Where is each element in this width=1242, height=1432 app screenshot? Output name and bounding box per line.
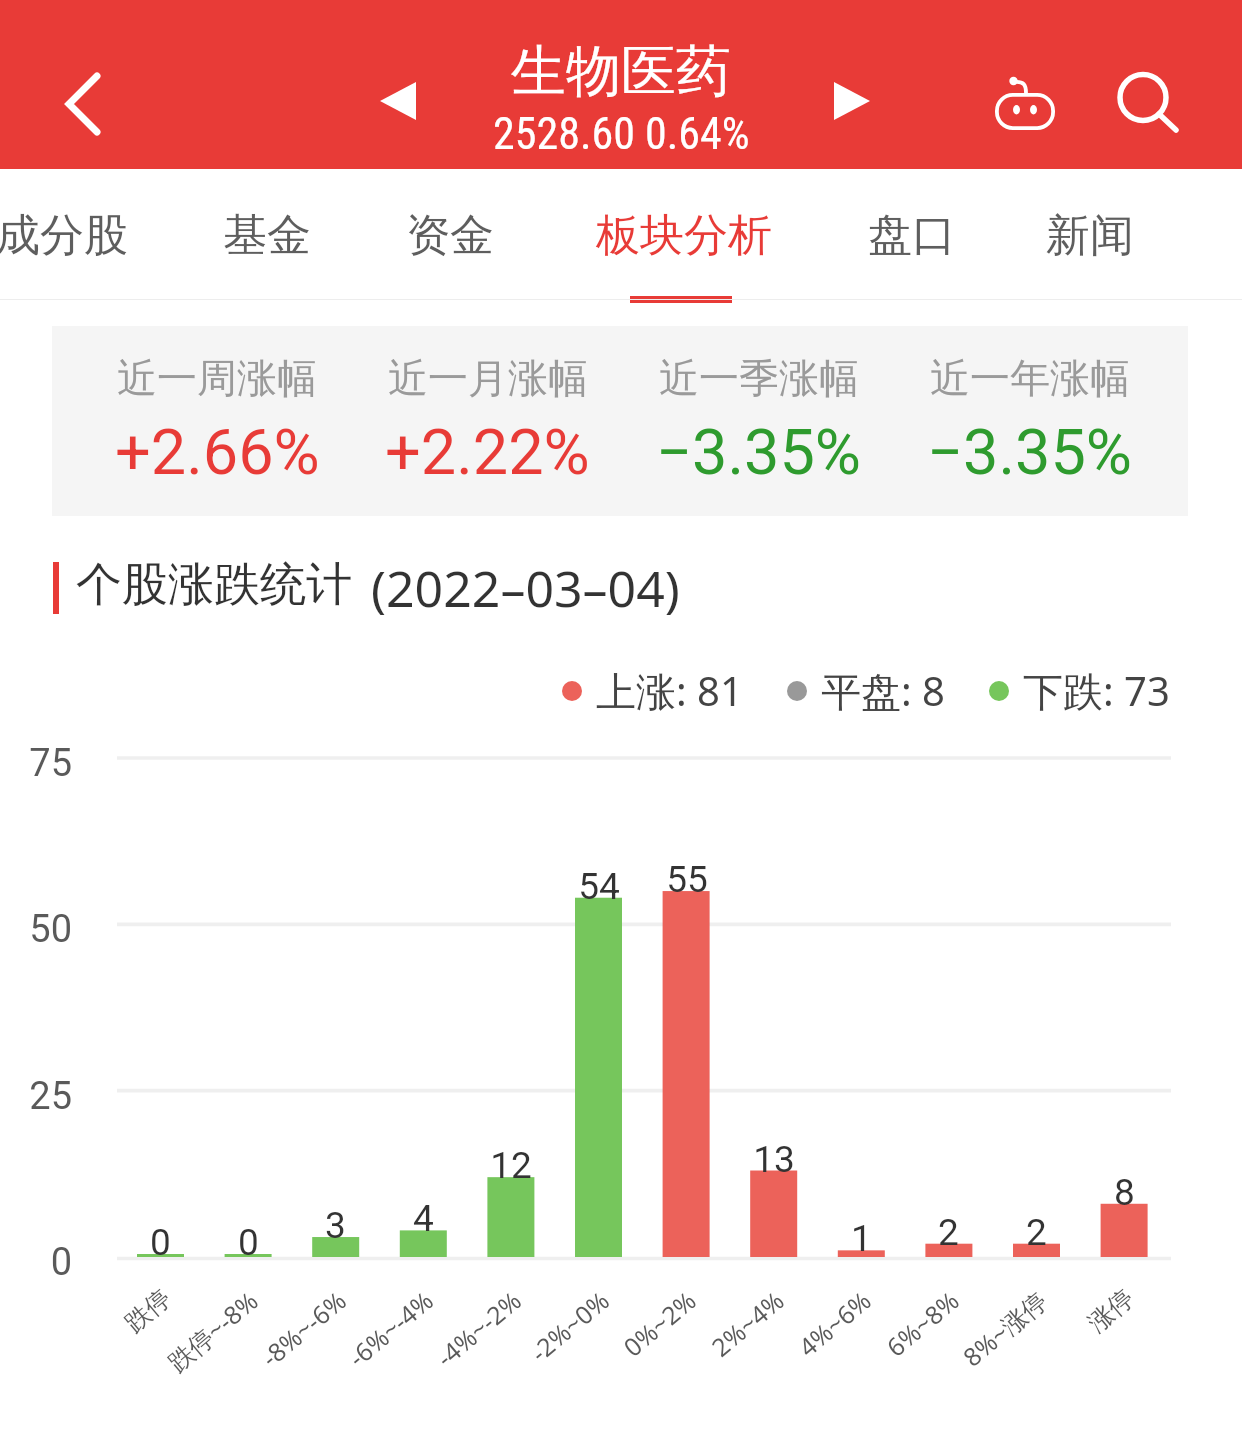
staticText: 8%~涨停 <box>955 1283 1054 1373</box>
button[interactable]: Search <box>1088 40 1208 160</box>
staticText: -2%~0% <box>523 1283 616 1369</box>
staticText: 板块分析 <box>596 208 772 263</box>
button[interactable]: 新闻 <box>1046 171 1134 300</box>
staticText: 12 <box>490 1144 532 1187</box>
staticText: 近一年涨幅 <box>930 353 1130 403</box>
staticText: 54 <box>578 865 620 908</box>
staticText: 6%~8% <box>879 1283 966 1364</box>
staticText: 50 <box>29 907 72 952</box>
staticText: 近一周涨幅 <box>117 353 317 403</box>
staticText: 0 <box>50 1240 72 1285</box>
staticText: 生物医药 <box>511 37 731 106</box>
staticText: 1 <box>851 1217 872 1260</box>
staticText: 近一季涨幅 <box>659 353 859 403</box>
staticText: 盘口 <box>868 208 956 263</box>
button[interactable]: 盘口 <box>868 171 956 300</box>
staticText: 0 <box>150 1221 171 1264</box>
staticText: 资金 <box>406 208 494 263</box>
staticText: 0 <box>238 1221 259 1264</box>
staticText: 个股涨跌统计 <box>76 556 352 614</box>
button[interactable]: 资金 <box>406 171 494 300</box>
staticText: -6%~-4% <box>341 1283 440 1374</box>
button[interactable]: Back <box>23 44 143 164</box>
staticText: 2 <box>1026 1211 1047 1254</box>
button[interactable]: Previous sector <box>338 41 458 161</box>
staticText: 跌停~-8% <box>160 1283 265 1378</box>
staticText: 25 <box>29 1074 72 1119</box>
button[interactable]: 基金 <box>223 171 311 300</box>
staticText: 13 <box>753 1138 795 1181</box>
staticText: 上涨: 81 <box>596 663 743 718</box>
staticText: 2528.60 0.64% <box>493 108 750 160</box>
staticText: 4%~6% <box>791 1283 878 1364</box>
staticText: -8%~-6% <box>254 1283 353 1374</box>
staticText: +2.22% <box>385 416 590 490</box>
staticText: −3.35% <box>656 416 861 490</box>
button[interactable]: 成分股 <box>0 171 128 300</box>
staticText: 8 <box>1114 1171 1135 1214</box>
staticText: 跌停 <box>119 1283 177 1338</box>
staticText: -4%~-2% <box>429 1283 528 1374</box>
staticText: 基金 <box>223 208 311 263</box>
staticText: 2%~4% <box>704 1283 791 1364</box>
staticText: 成分股 <box>0 208 128 263</box>
staticText: 3 <box>325 1204 346 1247</box>
staticText: +2.66% <box>115 416 320 490</box>
staticText: 0%~2% <box>616 1283 703 1364</box>
button[interactable]: AI assistant <box>966 43 1086 163</box>
staticText: 75 <box>29 741 72 786</box>
staticText: 55 <box>666 858 708 901</box>
staticText: (2022–03–04) <box>371 554 680 616</box>
staticText: 4 <box>413 1197 434 1240</box>
staticText: 下跌: 73 <box>1023 663 1170 718</box>
staticText: 涨停 <box>1082 1283 1140 1338</box>
staticText: −3.35% <box>927 416 1132 490</box>
button[interactable]: Next sector <box>792 41 912 161</box>
button[interactable]: 板块分析 <box>596 171 772 300</box>
staticText: 2 <box>938 1211 959 1254</box>
staticText: 近一月涨幅 <box>388 353 588 403</box>
staticText: 新闻 <box>1046 208 1134 263</box>
staticText: 平盘: 8 <box>821 663 945 718</box>
